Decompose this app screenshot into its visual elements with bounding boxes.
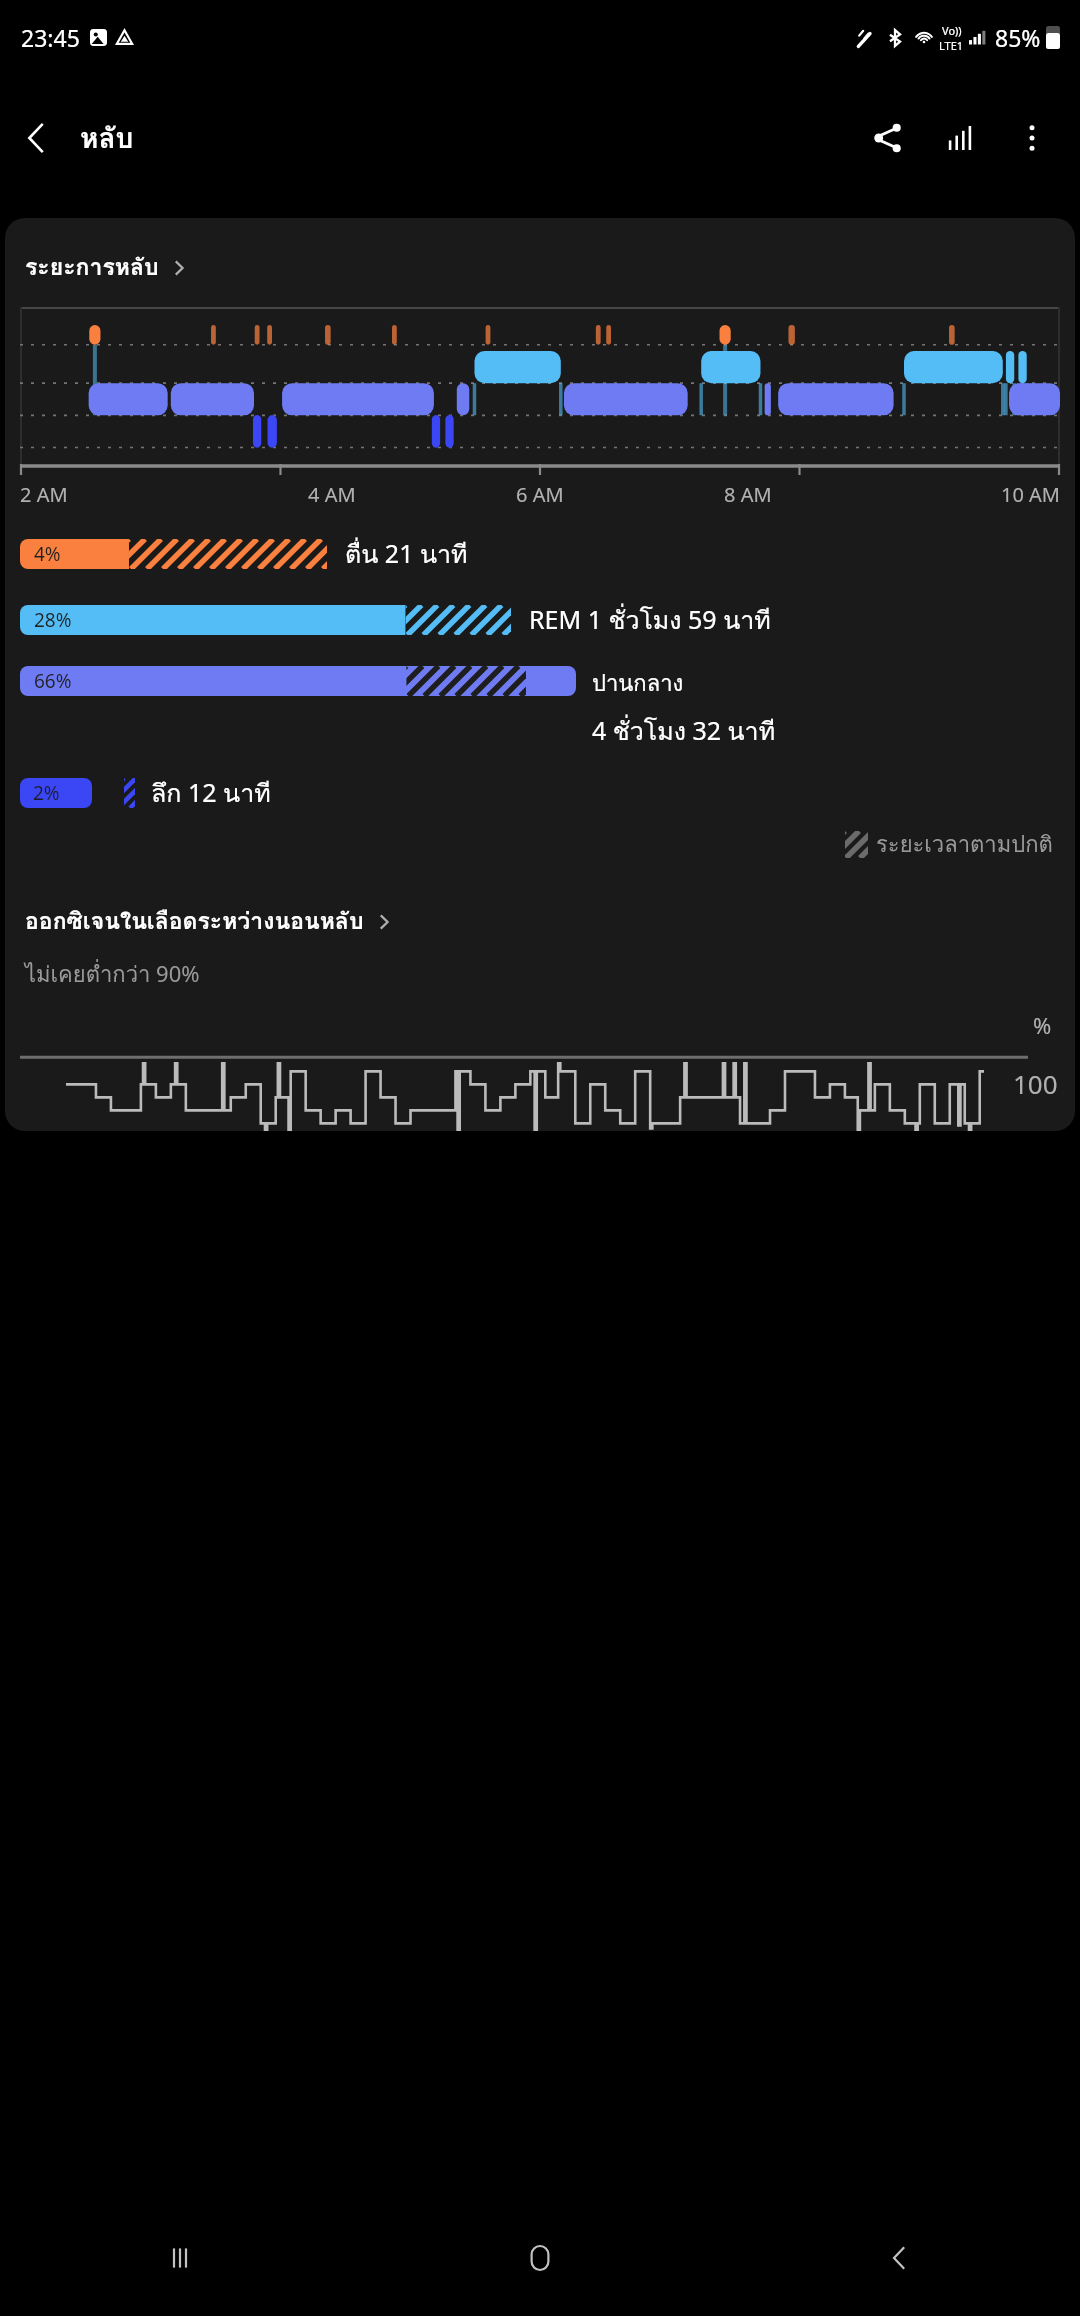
staticText: 28% — [34, 607, 72, 633]
button[interactable]: Back — [720, 2200, 1080, 2316]
staticText: 10 AM — [1001, 481, 1060, 508]
button[interactable]: ออกซิเจนในเลือดระหว่างนอนหลับ — [5, 898, 417, 945]
staticText: ระยะการหลับ — [25, 249, 159, 286]
staticText: 4% — [34, 541, 61, 567]
staticText: ระยะเวลาตามปกติ — [876, 827, 1053, 862]
staticText: ตื่น 21 นาที — [345, 534, 468, 574]
staticText: ไม่เคยต่ำกว่า 90% — [25, 957, 200, 992]
staticText: % — [1033, 1010, 1052, 1040]
staticText: 85% — [995, 22, 1041, 53]
staticText: 2% — [33, 780, 60, 806]
staticText: 2 AM — [20, 481, 68, 508]
staticText: 4 AM — [308, 481, 356, 508]
staticText: ลึก 12 นาที — [151, 773, 271, 813]
staticText: 6 AM — [516, 481, 564, 508]
staticText: 23:45 — [21, 22, 80, 53]
staticText: ออกซิเจนในเลือดระหว่างนอนหลับ — [25, 903, 364, 940]
staticText: ปานกลาง — [592, 666, 684, 701]
staticText: LTE1 — [939, 38, 964, 53]
staticText: 66% — [34, 668, 72, 694]
button[interactable]: Home — [360, 2200, 720, 2316]
button[interactable]: ระยะการหลับ — [5, 244, 212, 291]
staticText: Vo)) — [942, 23, 962, 38]
staticText: 8 AM — [724, 481, 772, 508]
button[interactable]: Share — [852, 102, 924, 174]
button[interactable]: Back — [0, 101, 74, 175]
button[interactable]: More options — [996, 102, 1068, 174]
button[interactable]: Recents — [0, 2200, 360, 2316]
staticText: 4 ชั่วโมง 32 นาที — [592, 711, 776, 751]
staticText: 100 — [1013, 1066, 1058, 1101]
button[interactable]: Statistics — [924, 102, 996, 174]
staticText: หลับ — [80, 116, 134, 161]
staticText: REM 1 ชั่วโมง 59 นาที — [529, 600, 771, 640]
